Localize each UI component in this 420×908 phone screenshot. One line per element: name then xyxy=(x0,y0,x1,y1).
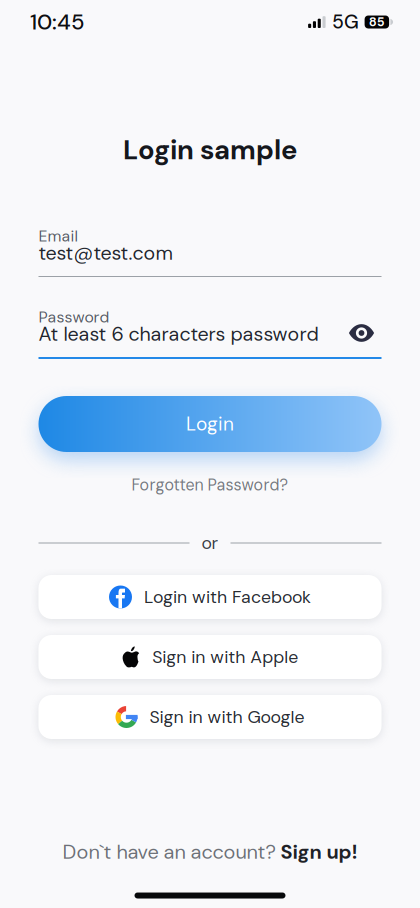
staticText: Sign up! xyxy=(280,839,357,865)
staticText: 5G xyxy=(332,9,359,35)
staticText: 85 xyxy=(369,14,385,30)
staticText: Email xyxy=(38,226,78,246)
staticText: Login sample xyxy=(123,132,297,168)
button[interactable]: Login with Facebook xyxy=(38,575,381,619)
staticText: test@test.com xyxy=(38,240,172,266)
staticText: 10:45 xyxy=(30,8,85,36)
button[interactable]: Forgotten Password? xyxy=(0,472,420,498)
button[interactable]: Sign in with Google xyxy=(38,695,381,739)
staticText: Don`t have an account? xyxy=(62,839,280,865)
staticText: Sign in with Apple xyxy=(152,645,298,668)
button[interactable]: Don`t have an account? xyxy=(0,838,420,866)
staticText: Forgotten Password? xyxy=(131,475,288,495)
staticText: Login with Facebook xyxy=(144,585,311,608)
button[interactable]: Sign in with Apple xyxy=(38,635,381,679)
button[interactable]: Show password xyxy=(341,319,381,347)
staticText: At least 6 characters password xyxy=(38,321,318,347)
staticText: Sign in with Google xyxy=(149,705,304,728)
staticText: or xyxy=(201,531,218,554)
staticText: Login xyxy=(186,412,234,436)
button[interactable]: Login xyxy=(38,396,381,452)
staticText: Password xyxy=(38,307,109,327)
